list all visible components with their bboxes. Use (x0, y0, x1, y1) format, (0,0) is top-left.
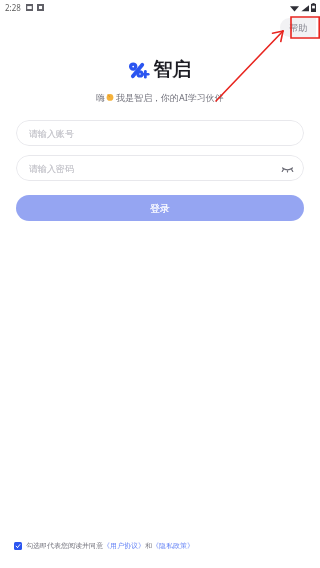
staticText: 嗨 (96, 92, 105, 103)
staticText: 《用户协议》 (103, 541, 145, 550)
staticText: 和 (145, 541, 152, 550)
button[interactable]: 请输入账号 (16, 120, 304, 146)
staticText: 请输入密码 (29, 163, 74, 174)
button[interactable]: 请输入密码 (16, 155, 304, 181)
staticText: 2:28 (5, 2, 21, 13)
button[interactable]: Agree to terms (14, 541, 194, 550)
other: Agree to terms (14, 542, 22, 550)
staticText: 请输入账号 (29, 128, 74, 139)
staticText: 勾选即代表您阅读并同意 (26, 541, 103, 550)
staticText: 智启 (153, 58, 191, 82)
staticText: 帮助 (289, 22, 307, 33)
staticText: 登录 (150, 202, 170, 215)
staticText: 《隐私政策》 (152, 541, 194, 550)
button[interactable]: 帮助 (280, 18, 316, 37)
staticText: 我是智启，你的AI学习伙伴 (116, 91, 224, 103)
button[interactable]: 登录 (16, 195, 304, 221)
button[interactable]: Show password (281, 162, 293, 174)
